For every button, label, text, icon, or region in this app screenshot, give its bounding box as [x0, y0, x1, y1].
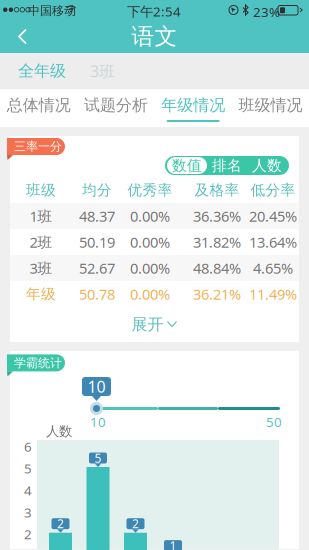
- staticText: 4.65%: [253, 258, 293, 278]
- staticText: 0.00%: [130, 232, 170, 252]
- staticText: 优秀率: [127, 181, 172, 199]
- button[interactable]: 试题分析: [77, 89, 154, 127]
- staticText: 1: [169, 538, 176, 550]
- button[interactable]: 返回: [0, 20, 42, 52]
- staticText: 年级: [26, 285, 56, 303]
- staticText: 人数: [46, 423, 72, 439]
- staticText: 2: [132, 516, 139, 532]
- staticText: 低分率: [250, 181, 295, 199]
- staticText: 班级: [26, 181, 56, 199]
- staticText: 展开: [131, 315, 163, 334]
- button[interactable]: 班级情况: [232, 89, 309, 127]
- staticText: 及格率: [194, 181, 239, 199]
- button[interactable]: 全年级: [6, 53, 78, 89]
- staticText: 均分: [82, 181, 112, 199]
- button[interactable]: 年级情况: [154, 89, 232, 127]
- button[interactable]: 排名: [207, 157, 247, 174]
- staticText: 36.36%: [193, 206, 241, 226]
- staticText: 10: [87, 376, 105, 397]
- staticText: 13.64%: [249, 232, 297, 252]
- staticText: 0.00%: [130, 206, 170, 226]
- staticText: 3班: [29, 258, 52, 278]
- staticText: 48.37: [79, 206, 115, 226]
- staticText: 0.00%: [130, 284, 170, 304]
- staticText: 2: [57, 516, 64, 532]
- staticText: 2: [24, 525, 32, 543]
- staticText: 5: [94, 450, 101, 466]
- staticText: 下午2:54: [127, 2, 181, 20]
- staticText: 11.49%: [249, 284, 297, 304]
- staticText: 10: [90, 413, 106, 431]
- staticText: 2班: [29, 232, 52, 252]
- staticText: 三率一分: [14, 139, 62, 154]
- staticText: 总体情况: [7, 95, 71, 115]
- staticText: 31.82%: [193, 232, 241, 252]
- staticText: 4: [24, 481, 32, 499]
- staticText: 试题分析: [84, 95, 148, 115]
- staticText: 全年级: [18, 61, 66, 81]
- button[interactable]: 展开: [10, 307, 299, 342]
- staticText: 3: [24, 503, 32, 521]
- staticText: 班级情况: [238, 95, 302, 115]
- staticText: 排名: [212, 156, 242, 174]
- staticText: 0.00%: [130, 258, 170, 278]
- staticText: 50.78: [79, 284, 115, 304]
- staticText: 年级情况: [161, 95, 225, 115]
- staticText: 人数: [252, 156, 282, 174]
- button[interactable]: 数值: [167, 157, 207, 174]
- staticText: 1班: [29, 206, 52, 226]
- staticText: 50.19: [79, 232, 115, 252]
- staticText: 36.21%: [193, 284, 241, 304]
- button[interactable]: 3班: [78, 52, 127, 90]
- staticText: 23%: [253, 3, 280, 21]
- staticText: 数值: [172, 156, 202, 174]
- staticText: 48.84%: [193, 258, 241, 278]
- button[interactable]: 人数: [247, 157, 287, 174]
- staticText: 52.67: [79, 258, 115, 278]
- staticText: 50: [266, 413, 282, 431]
- staticText: 中国移动: [28, 3, 76, 18]
- staticText: 6: [24, 438, 32, 455]
- staticText: 5: [24, 460, 32, 477]
- staticText: 20.45%: [249, 206, 297, 226]
- button[interactable]: 总体情况: [0, 89, 77, 127]
- staticText: 学霸统计: [14, 355, 62, 370]
- staticText: 语文: [131, 23, 177, 50]
- staticText: 3班: [90, 60, 115, 82]
